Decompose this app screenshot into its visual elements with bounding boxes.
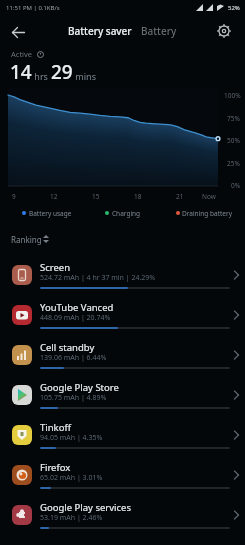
staticText: 14 <box>10 59 32 85</box>
button[interactable]: Firefox <box>0 455 245 495</box>
staticText: YouTube Vanced <box>40 301 114 314</box>
staticText: 29 <box>51 59 73 85</box>
staticText: Google Play services <box>40 501 131 514</box>
staticText: Battery usage <box>29 209 72 218</box>
staticText: Ranking <box>11 234 42 245</box>
staticText: Firefox <box>40 461 71 474</box>
staticText: 105.75 mAh | 4.89% <box>40 393 107 403</box>
button[interactable]: Battery <box>141 24 177 38</box>
staticText: Now <box>202 192 216 201</box>
staticText: Draining battery <box>182 209 233 218</box>
staticText: 65.02 mAh | 3.01% <box>40 473 103 483</box>
staticText: 100% <box>224 91 241 100</box>
button[interactable] <box>212 19 236 43</box>
staticText: 139.06 mAh | 6.44% <box>40 353 107 363</box>
button[interactable]: Battery saver <box>68 24 132 38</box>
staticText: 15 <box>92 192 100 201</box>
staticText: 53.19 mAh | 2.46% <box>40 513 103 523</box>
staticText: 524.72 mAh | 4 hr 37 min | 24.29% <box>40 273 156 283</box>
staticText: Active <box>11 49 33 59</box>
button[interactable]: Google Play Store <box>0 375 245 415</box>
staticText: 0% <box>231 181 241 190</box>
staticText: Tinkoff <box>40 421 71 434</box>
staticText: Battery <box>141 24 177 38</box>
staticText: 25% <box>227 159 240 168</box>
staticText: 448.09 mAh | 20.74% <box>40 313 111 323</box>
staticText: 94.05 mAh | 4.35% <box>40 433 103 443</box>
button[interactable]: Screen <box>0 255 245 295</box>
staticText: 50% <box>227 136 240 145</box>
staticText: Charging <box>112 209 141 218</box>
staticText: 75% <box>227 114 240 123</box>
staticText: 52% <box>228 4 240 12</box>
staticText: 11:51 PM | 0.1KB/s <box>6 4 60 12</box>
staticText: mins <box>73 70 96 82</box>
staticText: 18 <box>134 192 142 201</box>
staticText: 9 <box>12 192 16 201</box>
staticText: 12 <box>50 192 58 201</box>
button[interactable]: Google Play services <box>0 495 245 535</box>
button[interactable]: Tinkoff <box>0 415 245 455</box>
staticText: 21 <box>176 192 184 201</box>
staticText: Screen <box>40 261 71 274</box>
staticText: Google Play Store <box>40 381 119 394</box>
staticText: hrs <box>32 70 51 82</box>
button[interactable] <box>6 20 30 44</box>
staticText: Battery saver <box>68 24 132 38</box>
button[interactable]: Cell standby <box>0 335 245 375</box>
button[interactable]: YouTube Vanced <box>0 295 245 335</box>
staticText: Cell standby <box>40 341 95 354</box>
